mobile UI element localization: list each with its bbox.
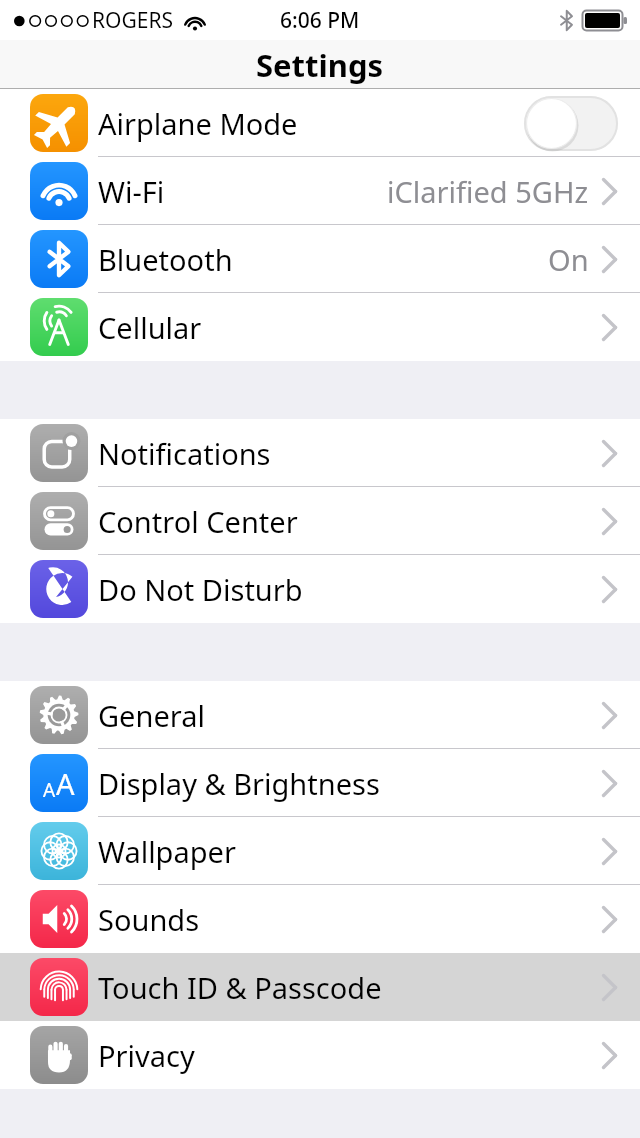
staticText: Airplane Mode	[98, 104, 298, 143]
button[interactable]: Sounds	[0, 885, 640, 953]
button[interactable]: Control Center	[0, 487, 640, 555]
staticText: Display & Brightness	[98, 764, 380, 803]
staticText: Wi-Fi	[98, 172, 165, 211]
staticText: A	[56, 764, 75, 803]
staticText: Privacy	[98, 1036, 195, 1075]
button[interactable]: Privacy	[0, 1021, 640, 1089]
staticText: General	[98, 696, 205, 735]
staticText: Control Center	[98, 502, 298, 541]
button[interactable]: Airplane Mode	[0, 89, 640, 157]
staticText: Sounds	[98, 900, 200, 939]
staticText: 6:06 PM	[280, 6, 360, 35]
button[interactable]: Touch ID & Passcode	[0, 953, 640, 1021]
button[interactable]: General	[0, 681, 640, 749]
staticText: A	[43, 777, 56, 803]
button[interactable]: Wallpaper	[0, 817, 640, 885]
staticText: Notifications	[98, 434, 271, 473]
staticText: ROGERS	[92, 6, 174, 35]
button[interactable]: A	[0, 749, 640, 817]
staticText: Touch ID & Passcode	[98, 968, 382, 1007]
staticText: Bluetooth	[98, 240, 233, 279]
staticText: Do Not Disturb	[98, 570, 303, 609]
staticText: Wallpaper	[98, 832, 236, 871]
staticText: On	[548, 240, 589, 279]
staticText: Cellular	[98, 308, 202, 347]
button[interactable]: Cellular	[0, 293, 640, 361]
button[interactable]: Bluetooth	[0, 225, 640, 293]
button[interactable]: Wi-Fi	[0, 157, 640, 225]
button[interactable]: Do Not Disturb	[0, 555, 640, 623]
button[interactable]: Notifications	[0, 419, 640, 487]
button[interactable]: Airplane Mode toggle	[524, 96, 618, 151]
staticText: iClarified 5GHz	[387, 172, 589, 211]
staticText: Settings	[256, 44, 384, 86]
